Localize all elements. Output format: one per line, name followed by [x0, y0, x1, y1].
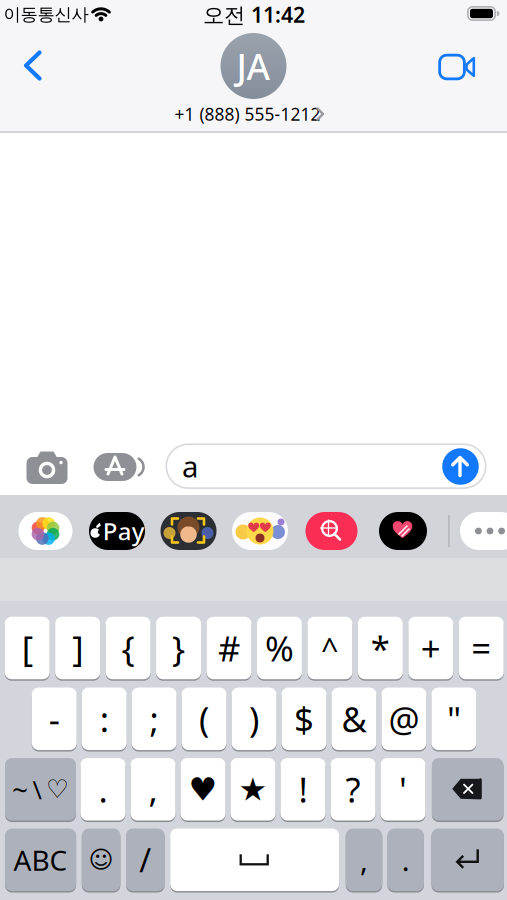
button[interactable]: !: [280, 757, 325, 821]
button[interactable]: /: [126, 827, 165, 892]
button[interactable]: Stickers: [232, 512, 288, 550]
staticText: ,: [148, 766, 157, 812]
staticText: ☺: [89, 846, 114, 873]
button[interactable]: +: [408, 616, 453, 680]
staticText: +: [421, 625, 441, 671]
staticText: 오전 11:42: [203, 0, 305, 29]
button[interactable]: FaceTime: [432, 47, 482, 87]
button[interactable]: .: [80, 757, 125, 821]
staticText: ]: [72, 625, 83, 671]
button[interactable]: Emoji: [82, 827, 120, 892]
button[interactable]: Camera: [25, 448, 69, 488]
staticText: ": [447, 696, 461, 742]
button[interactable]: Delete: [432, 757, 503, 821]
button[interactable]: #: [206, 616, 251, 680]
button[interactable]: Send: [442, 448, 479, 485]
staticText: \: [32, 772, 41, 806]
staticText: Pay: [103, 515, 145, 547]
button[interactable]: {: [106, 616, 151, 680]
button[interactable]: $: [281, 686, 326, 751]
button[interactable]: iMessage apps: [92, 447, 146, 487]
button[interactable]: @: [381, 686, 426, 751]
button[interactable]: %: [257, 616, 302, 680]
button[interactable]: ": [431, 686, 476, 751]
button[interactable]: ]: [55, 616, 100, 680]
staticText: +1 (888) 555-1212: [174, 102, 320, 125]
button[interactable]: *: [358, 616, 403, 680]
button[interactable]: ,: [346, 827, 382, 892]
staticText: $: [294, 696, 314, 742]
button[interactable]: Return: [431, 827, 504, 892]
staticText: @: [388, 696, 419, 742]
staticText: .: [98, 766, 107, 812]
button[interactable]: #images: [305, 512, 357, 550]
button[interactable]: .: [387, 827, 424, 892]
staticText: -: [49, 696, 60, 742]
button[interactable]: ^: [307, 616, 352, 680]
staticText: ,: [360, 840, 368, 879]
button[interactable]: Digital Touch: [379, 512, 427, 550]
staticText: JA: [236, 42, 270, 90]
staticText: ): [249, 696, 259, 742]
button[interactable]: Back: [13, 37, 53, 93]
button[interactable]: Conversation details: [178, 30, 329, 125]
staticText: a: [182, 447, 198, 486]
staticText: ?: [345, 766, 360, 812]
staticText: ^: [321, 628, 339, 668]
staticText: %: [265, 625, 294, 671]
staticText: *: [371, 625, 390, 671]
staticText: {: [122, 625, 135, 671]
staticText: ': [399, 766, 407, 812]
button[interactable]: ): [231, 686, 276, 751]
staticText: ;: [150, 696, 159, 742]
button[interactable]: (: [182, 686, 227, 751]
button[interactable]: Space: [170, 827, 339, 892]
staticText: [: [22, 625, 33, 671]
button[interactable]: =: [459, 616, 504, 680]
staticText: ♥: [188, 771, 217, 807]
staticText: (: [199, 696, 209, 742]
button[interactable]: ?: [330, 757, 375, 821]
button[interactable]: [: [5, 616, 50, 680]
button[interactable]: More apps: [460, 512, 507, 550]
button[interactable]: Message field: [165, 443, 486, 489]
button[interactable]: ♥: [180, 757, 225, 821]
button[interactable]: ,: [130, 757, 175, 821]
button[interactable]: ;: [132, 686, 177, 751]
staticText: !: [298, 766, 307, 812]
staticText: ★: [238, 771, 267, 807]
button[interactable]: -: [32, 686, 77, 751]
staticText: .: [402, 840, 410, 879]
button[interactable]: ★: [230, 757, 275, 821]
staticText: }: [172, 625, 185, 671]
staticText: 이동통신사: [3, 4, 88, 25]
button[interactable]: Apple Pay: [89, 512, 145, 550]
staticText: =: [471, 625, 491, 671]
button[interactable]: }: [156, 616, 201, 680]
button[interactable]: ABC: [5, 827, 76, 892]
staticText: ♡: [46, 775, 69, 804]
staticText: #: [218, 625, 240, 671]
button[interactable]: ': [380, 757, 425, 821]
button[interactable]: ~: [5, 757, 76, 821]
button[interactable]: Photos: [18, 512, 72, 550]
button[interactable]: :: [82, 686, 127, 751]
button[interactable]: &: [331, 686, 376, 751]
button[interactable]: Memoji Stickers: [160, 512, 216, 550]
staticText: :: [100, 696, 109, 742]
staticText: &: [341, 696, 366, 742]
staticText: /: [139, 839, 151, 881]
staticText: ~: [12, 771, 28, 808]
staticText: ABC: [14, 841, 68, 878]
